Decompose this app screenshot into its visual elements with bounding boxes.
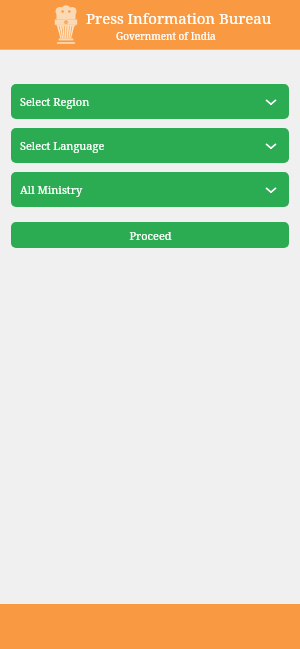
staticText: Select Language [20, 138, 263, 153]
button[interactable]: Proceed [11, 222, 289, 248]
staticText: Select Region [20, 94, 263, 109]
staticText: Press Information Bureau [86, 8, 272, 28]
staticText: Proceed [129, 228, 172, 243]
staticText: Government of India [116, 29, 216, 43]
button[interactable]: Select Region [11, 84, 289, 119]
button[interactable]: Select Language [11, 128, 289, 163]
staticText: All Ministry [20, 182, 263, 197]
button[interactable]: All Ministry [11, 172, 289, 207]
